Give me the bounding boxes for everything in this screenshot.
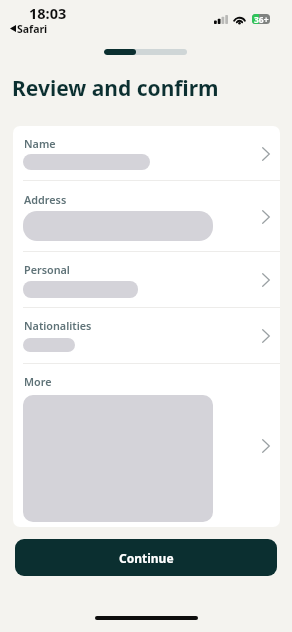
staticText: 18:03 bbox=[29, 3, 67, 23]
staticText: Name bbox=[24, 136, 56, 151]
button[interactable]: Nationalities bbox=[13, 308, 280, 364]
staticText: Review and confirm bbox=[12, 74, 219, 103]
button[interactable]: Continue bbox=[15, 539, 277, 576]
button[interactable]: More bbox=[13, 364, 280, 528]
staticText: Personal bbox=[24, 262, 70, 277]
staticText: Continue bbox=[119, 550, 174, 566]
staticText: More bbox=[24, 374, 52, 389]
staticText: 36+ bbox=[254, 14, 269, 24]
button[interactable]: Personal bbox=[13, 252, 280, 308]
button[interactable]: Name bbox=[13, 126, 280, 181]
staticText: Nationalities bbox=[24, 318, 92, 333]
button[interactable]: Address bbox=[13, 181, 280, 252]
staticText: Address bbox=[24, 192, 67, 207]
staticText: Safari bbox=[17, 22, 48, 36]
